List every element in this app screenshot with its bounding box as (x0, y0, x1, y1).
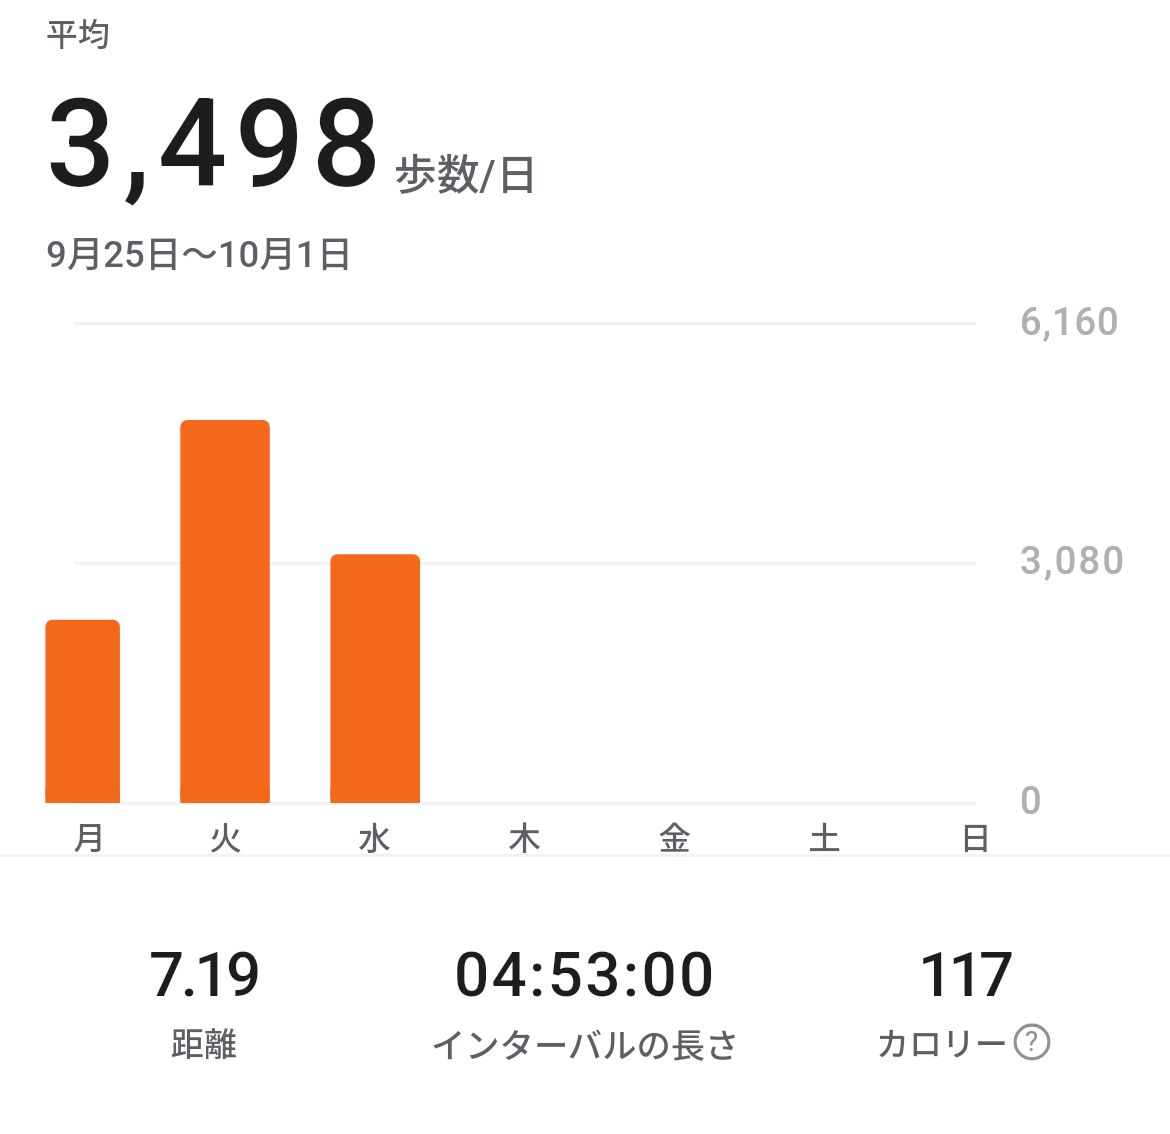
staticText: カロリー (876, 1018, 1008, 1066)
staticText: ? (1025, 1025, 1039, 1058)
staticText: 117 (918, 938, 1010, 1011)
staticText: 0 (1020, 779, 1042, 824)
staticText: 日 (959, 812, 992, 859)
staticText: 水 (358, 812, 391, 859)
staticText: 土 (808, 812, 841, 859)
staticText: 9月25日〜10月1日 (46, 225, 353, 278)
staticText: 金 (658, 812, 691, 859)
staticText: 04:53:00 (454, 938, 717, 1011)
staticText: 7.19 (149, 938, 258, 1011)
staticText: 6,160 (1020, 300, 1120, 345)
button[interactable]: 117 (768, 938, 1158, 1088)
staticText: 3,498 (46, 73, 389, 216)
staticText: インターバルの長さ (431, 1018, 740, 1068)
staticText: 月 (73, 812, 106, 859)
staticText: 歩数/日 (394, 140, 539, 202)
staticText: 木 (508, 812, 541, 859)
staticText: 距離 (171, 1018, 237, 1066)
staticText: 火 (209, 812, 242, 859)
staticText: 平均 (46, 9, 111, 55)
button[interactable]: 7.19 (8, 938, 398, 1088)
button[interactable]: Help about calories (1013, 1023, 1051, 1061)
button[interactable]: 04:53:00 (390, 938, 780, 1088)
staticText: 3,080 (1020, 539, 1127, 584)
